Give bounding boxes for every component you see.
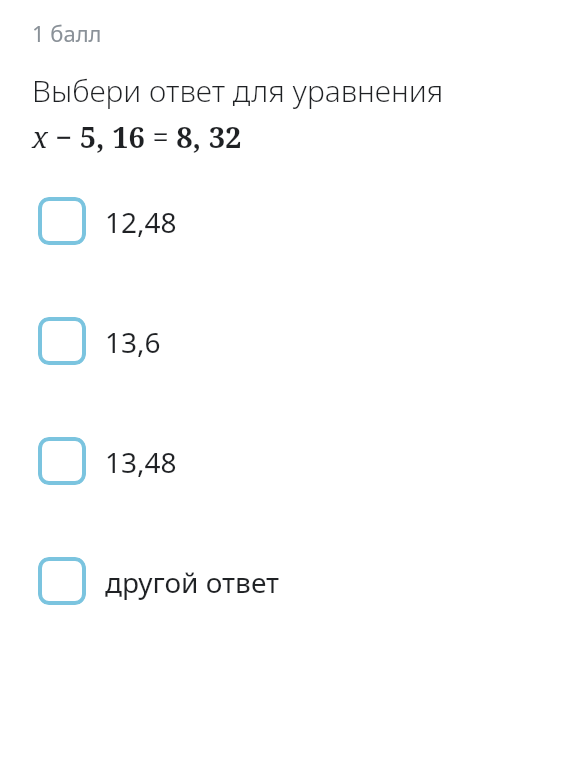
- staticText: 13,48: [105, 443, 177, 481]
- staticText: x − 5, 16 = 8, 32: [32, 117, 242, 156]
- staticText: 12,48: [105, 203, 177, 241]
- button[interactable]: 12,48: [0, 195, 576, 315]
- staticText: 13,6: [105, 323, 161, 361]
- button[interactable]: 13,6: [0, 315, 576, 435]
- button[interactable]: другой ответ: [0, 555, 576, 675]
- staticText: 1 балл: [32, 18, 102, 48]
- staticText: Выбери ответ для уравнения: [32, 70, 444, 111]
- staticText: другой ответ: [105, 563, 280, 601]
- button[interactable]: 13,48: [0, 435, 576, 555]
